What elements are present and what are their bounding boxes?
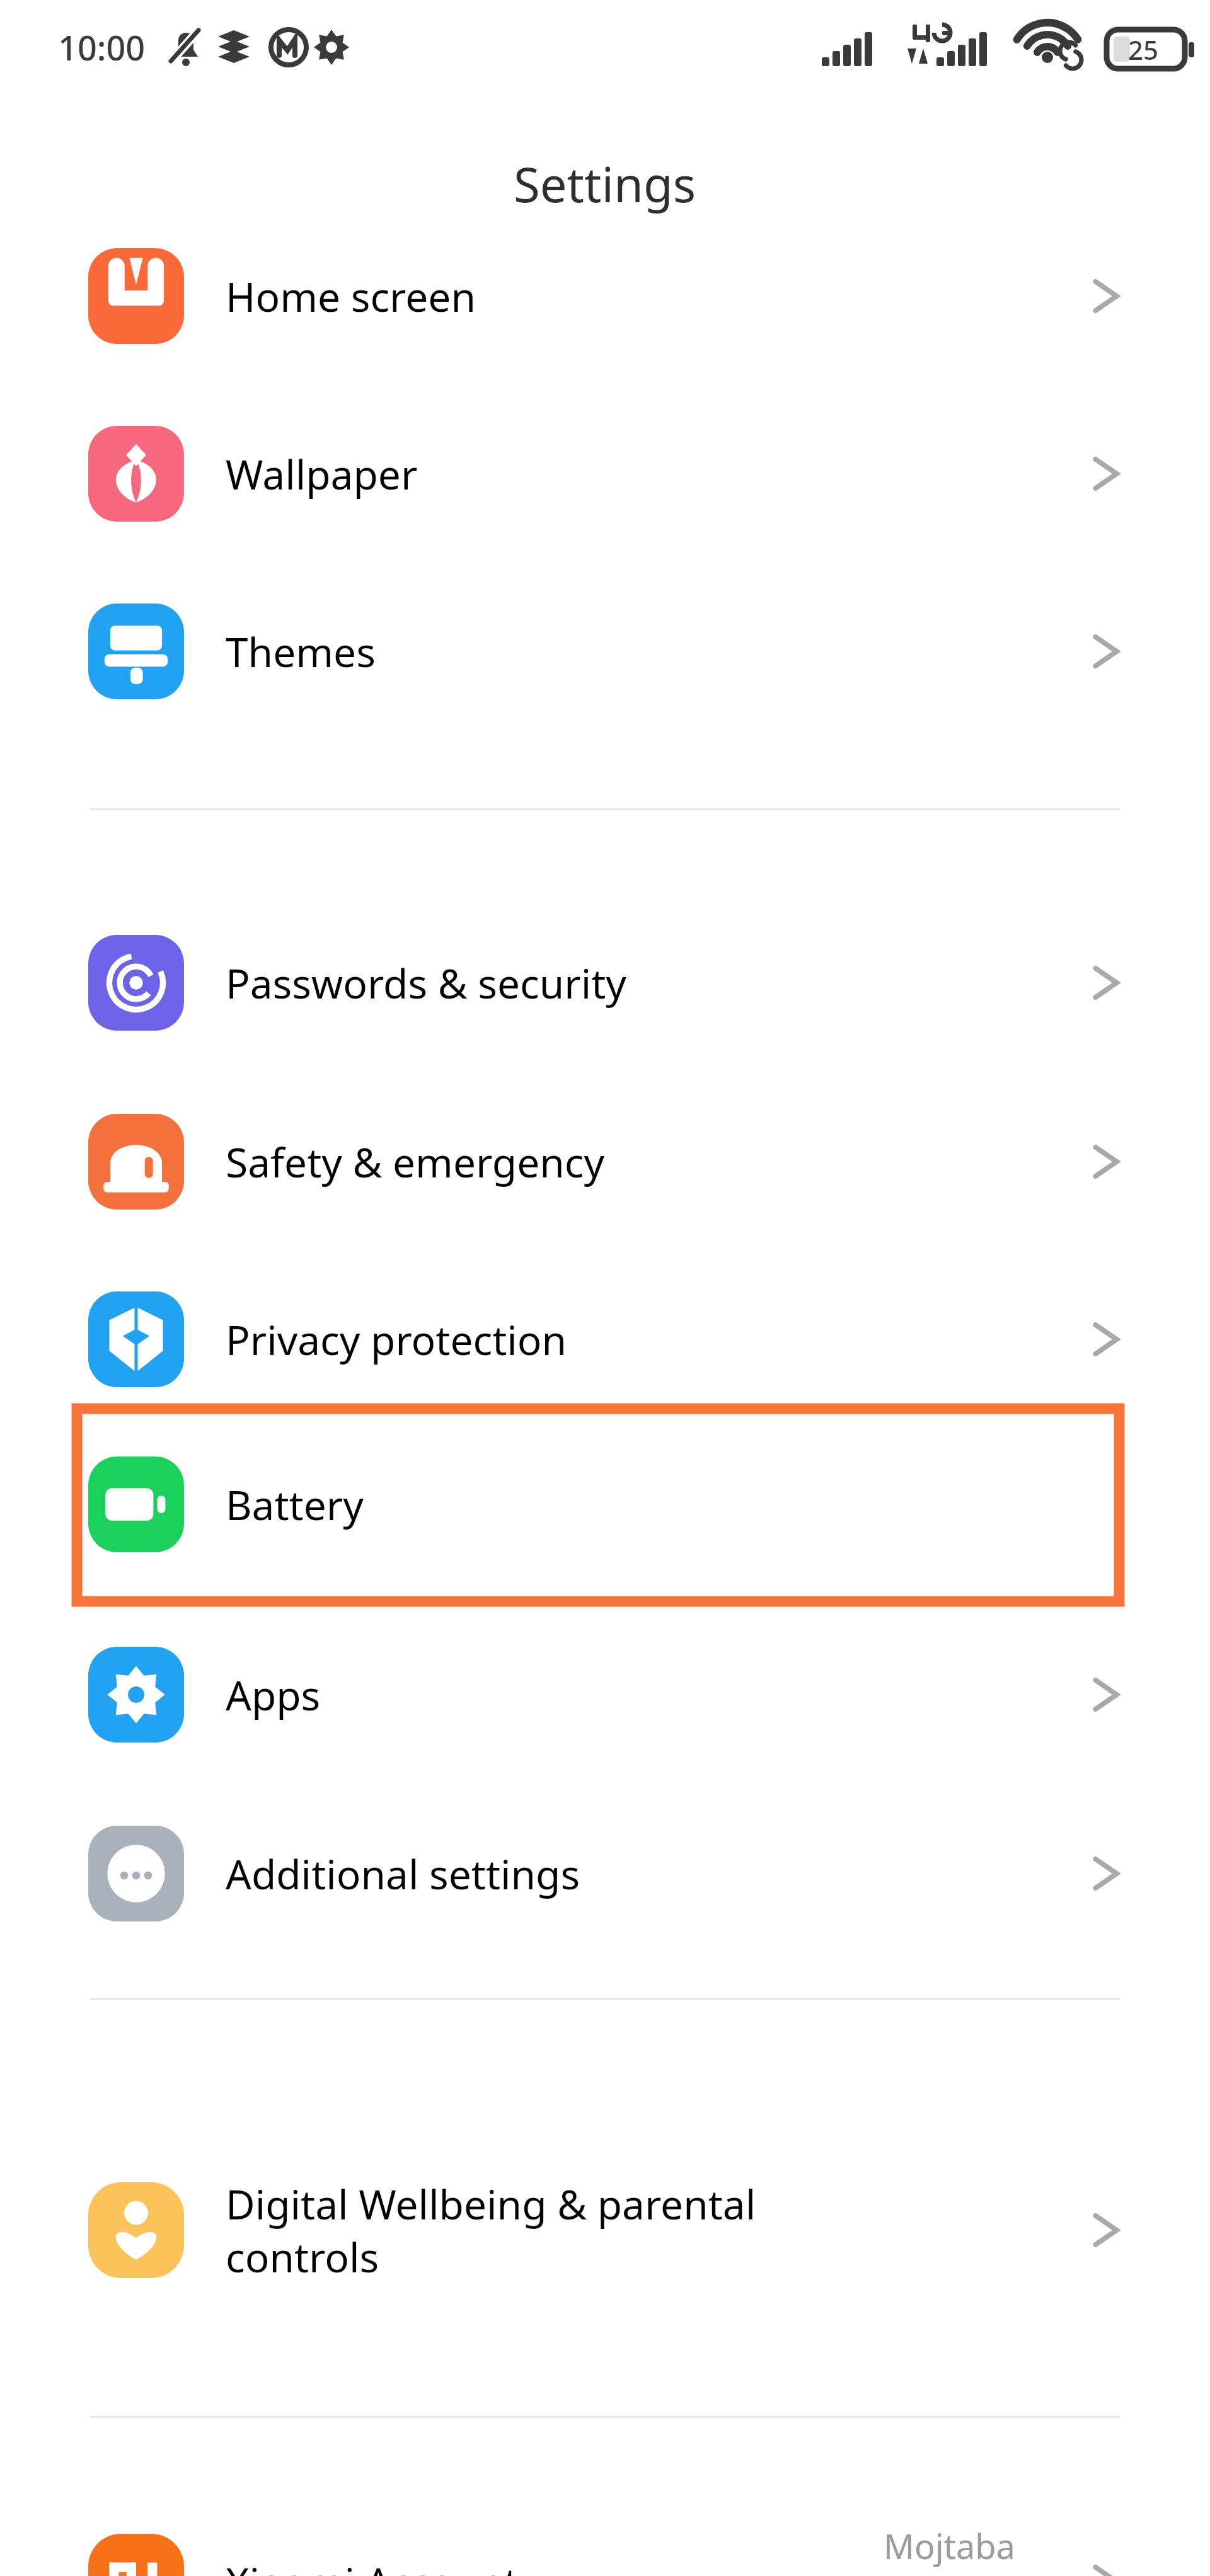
button[interactable]: Privacy protection xyxy=(0,1251,1210,1428)
button[interactable]: Themes xyxy=(0,563,1210,740)
staticText: Xiaomi Account xyxy=(226,2555,519,2576)
staticText: Privacy protection xyxy=(226,1312,567,1367)
staticText: Home screen xyxy=(226,269,476,324)
button[interactable]: Safety & emergency xyxy=(0,1073,1210,1251)
staticText: Passwords & security xyxy=(226,956,626,1010)
other: Signal, wifi and battery xyxy=(813,19,1191,76)
button[interactable]: Passwords & security xyxy=(0,894,1210,1072)
other: Status icons xyxy=(163,22,377,72)
button[interactable]: Home screen xyxy=(0,207,1210,385)
staticText: 10:00 xyxy=(58,24,146,71)
staticText: Safety & emergency xyxy=(226,1135,605,1189)
staticText: Apps xyxy=(226,1668,321,1722)
button[interactable]: Digital Wellbeing & parental controls xyxy=(0,2141,1210,2319)
staticText: 25 xyxy=(1128,31,1159,67)
button[interactable]: Xiaomi Account xyxy=(0,2493,1210,2576)
button[interactable]: Wallpaper xyxy=(0,385,1210,563)
staticText: Digital Wellbeing & parental controls xyxy=(226,2177,756,2284)
button[interactable]: Apps xyxy=(0,1606,1210,1783)
button[interactable]: Battery xyxy=(0,1416,1210,1593)
staticText: Settings xyxy=(514,151,696,217)
staticText: Additional settings xyxy=(226,1846,580,1901)
staticText: Wallpaper xyxy=(226,447,418,501)
staticText: Themes xyxy=(226,624,376,679)
staticText: Battery xyxy=(226,1477,364,1532)
button[interactable]: Additional settings xyxy=(0,1785,1210,1962)
staticText: Mojtaba xyxy=(884,2522,1015,2569)
